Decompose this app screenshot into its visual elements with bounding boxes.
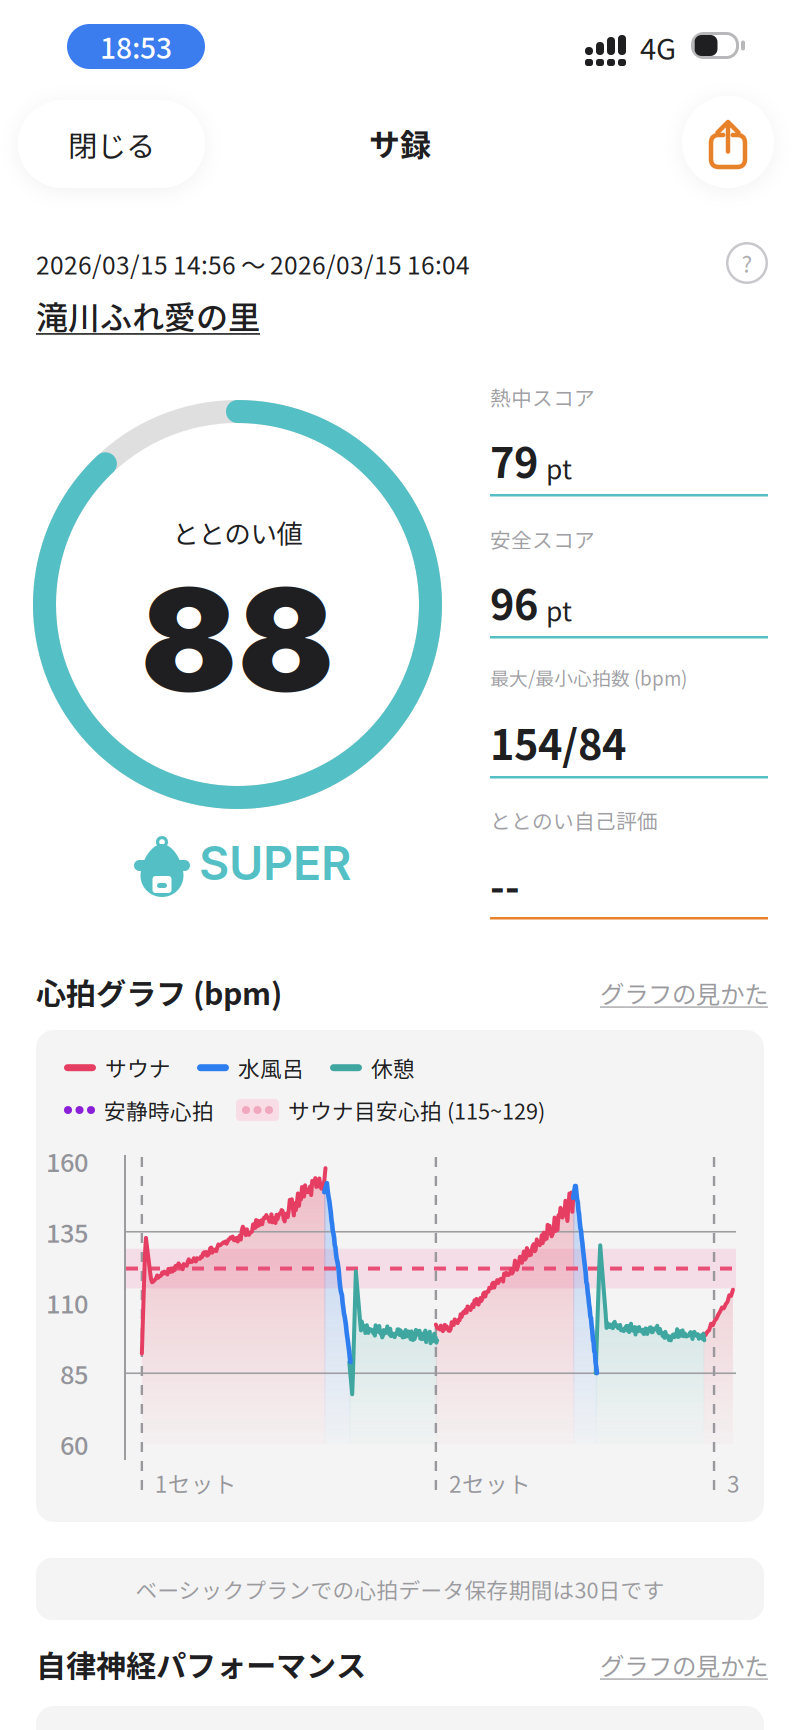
staticText: 3 (727, 1467, 740, 1499)
button[interactable]: Help (726, 242, 768, 284)
staticText: 安全スコア (490, 524, 595, 554)
staticText: グラフの見かた (600, 1647, 768, 1682)
staticText: 最大/最小心拍数 (bpm) (490, 664, 687, 691)
staticText: pt (546, 591, 572, 629)
staticText: ととのい自己評価 (490, 805, 658, 835)
staticText: 154/84 (490, 712, 626, 772)
staticText: 4G (640, 26, 676, 68)
staticText: 熱中スコア (490, 382, 595, 412)
staticText: 160 (46, 1143, 88, 1179)
staticText: 水風呂 (238, 1052, 304, 1083)
staticText: 自律神経パフォーマンス (36, 1642, 366, 1686)
staticText: 88 (140, 553, 334, 726)
staticText: 休憩 (371, 1052, 415, 1083)
staticText: サ録 (369, 120, 431, 165)
staticText: pt (546, 449, 572, 487)
staticText: 110 (46, 1284, 88, 1321)
staticText: 96 (490, 572, 538, 632)
staticText: ベーシックプランでの心拍データ保存期間は30日です (135, 1573, 664, 1605)
staticText: 79 (490, 430, 538, 490)
staticText: 2026/03/15 14:56 〜 2026/03/15 16:04 (36, 246, 470, 281)
button[interactable]: グラフの見かた (564, 1647, 768, 1682)
staticText: 18:53 (100, 26, 172, 67)
staticText: サウナ (105, 1052, 171, 1083)
button[interactable]: グラフの見かた (564, 975, 768, 1010)
button[interactable]: 閉じる (18, 100, 205, 188)
button[interactable]: Share (682, 96, 774, 188)
staticText: ? (741, 247, 752, 279)
staticText: 60 (60, 1426, 88, 1462)
button[interactable]: 滝川ふれ愛の里 (36, 292, 260, 338)
staticText: 2セット (449, 1467, 531, 1499)
staticText: 85 (60, 1355, 88, 1392)
staticText: -- (490, 856, 520, 913)
staticText: 135 (46, 1213, 88, 1250)
staticText: 閉じる (68, 123, 155, 165)
staticText: SUPER (199, 835, 351, 891)
staticText: サウナ目安心拍 (115~129) (288, 1094, 545, 1126)
staticText: 心拍グラフ (bpm) (36, 970, 282, 1014)
staticText: グラフの見かた (600, 975, 768, 1010)
staticText: ととのい値 (172, 513, 302, 551)
staticText: 安静時心拍 (104, 1094, 214, 1126)
staticText: 滝川ふれ愛の里 (36, 292, 260, 338)
staticText: 1セット (155, 1467, 237, 1499)
